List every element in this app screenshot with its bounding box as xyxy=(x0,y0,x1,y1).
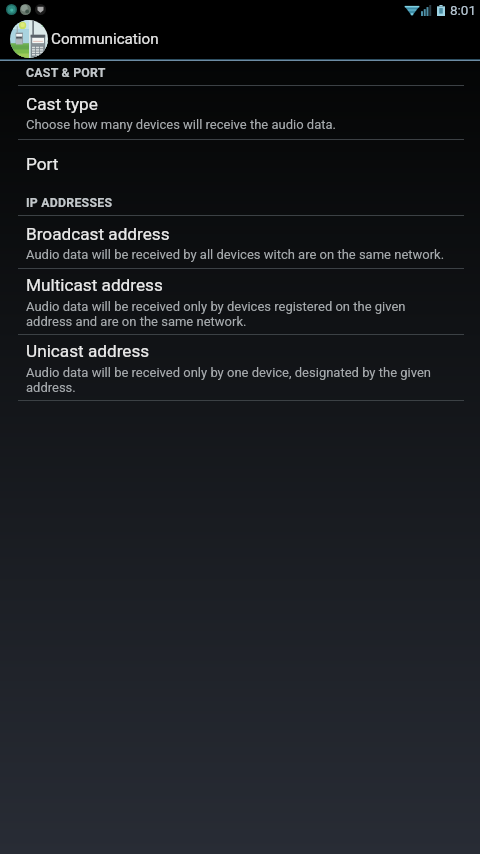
staticText: Communication xyxy=(51,30,159,48)
staticText: IP ADDRESSES xyxy=(26,196,113,210)
button[interactable]: Multicast address xyxy=(0,268,480,334)
staticText: Unicast address xyxy=(26,341,150,361)
staticText: Audio data will be received by all devic… xyxy=(26,247,445,262)
staticText: Port xyxy=(26,154,59,174)
button[interactable]: Unicast address xyxy=(0,334,480,401)
staticText: Audio data will be received only by one … xyxy=(26,365,446,395)
button[interactable]: Port xyxy=(0,139,480,191)
staticText: Audio data will be received only by devi… xyxy=(26,299,446,329)
button[interactable]: Cast type xyxy=(0,85,480,139)
other: Communication app icon xyxy=(10,20,48,58)
staticText: Multicast address xyxy=(26,275,163,295)
staticText: 8:01 xyxy=(450,2,477,18)
staticText: Cast type xyxy=(26,94,98,114)
staticText: Broadcast address xyxy=(26,224,170,244)
staticText: CAST & PORT xyxy=(26,66,106,80)
button[interactable]: Broadcast address xyxy=(0,215,480,268)
button[interactable]: Communication app icon xyxy=(0,19,480,59)
staticText: Choose how many devices will receive the… xyxy=(26,117,337,132)
